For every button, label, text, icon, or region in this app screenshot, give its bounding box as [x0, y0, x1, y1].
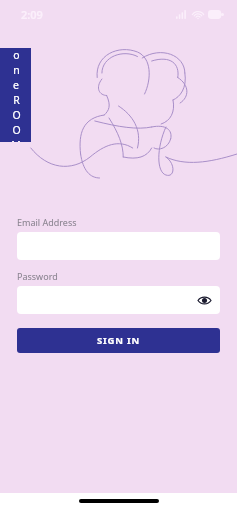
staticText: 2:09	[21, 7, 43, 22]
staticText: o	[13, 48, 20, 62]
staticText: e	[13, 78, 19, 92]
staticText: O	[12, 108, 21, 122]
staticText: Email Address	[17, 216, 77, 228]
button[interactable]: Show password	[17, 286, 220, 314]
staticText: M	[11, 138, 21, 142]
staticText: SIGN IN	[97, 334, 141, 347]
staticText: O	[12, 123, 21, 137]
button[interactable]: Show password	[196, 292, 212, 308]
staticText: n	[13, 63, 20, 77]
staticText: R	[13, 93, 20, 107]
staticText: Password	[17, 270, 58, 282]
button[interactable]: SIGN IN	[17, 328, 220, 353]
button[interactable]: o	[0, 48, 31, 142]
